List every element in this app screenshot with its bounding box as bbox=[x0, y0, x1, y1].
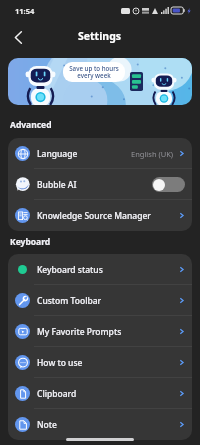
button[interactable]: Knowledge Source Manager bbox=[8, 200, 192, 231]
staticText: Save up to hours every week bbox=[69, 64, 119, 80]
staticText: Knowledge Source Manager bbox=[37, 210, 151, 222]
staticText: Keyboard bbox=[10, 236, 51, 248]
button[interactable]: How to use bbox=[8, 347, 192, 378]
button[interactable]: Language bbox=[8, 138, 192, 169]
button[interactable]: Bubble AI bbox=[8, 169, 192, 200]
staticText: My Favorite Prompts bbox=[37, 326, 122, 338]
staticText: Custom Toolbar bbox=[37, 295, 102, 307]
button[interactable]: Keyboard status bbox=[8, 254, 192, 285]
staticText: Note bbox=[37, 419, 57, 431]
staticText: 11:54 bbox=[15, 6, 35, 16]
button[interactable]: Custom Toolbar bbox=[8, 285, 192, 316]
button[interactable]: Clipboard bbox=[8, 378, 192, 409]
staticText: Language bbox=[37, 148, 78, 160]
staticText: Advanced bbox=[10, 119, 52, 131]
staticText: How to use bbox=[37, 357, 83, 369]
staticText: Bubble AI bbox=[37, 179, 77, 191]
staticText: Settings bbox=[78, 29, 122, 43]
button[interactable] bbox=[152, 177, 185, 192]
button[interactable]: My Favorite Prompts bbox=[8, 316, 192, 347]
staticText: Clipboard bbox=[37, 388, 77, 400]
staticText: Keyboard status bbox=[37, 264, 103, 276]
button[interactable]: Save up to hours every week bbox=[8, 58, 192, 105]
button[interactable]: Back bbox=[7, 26, 29, 48]
button[interactable]: Note bbox=[8, 409, 192, 440]
staticText: English (UK) bbox=[131, 149, 174, 159]
